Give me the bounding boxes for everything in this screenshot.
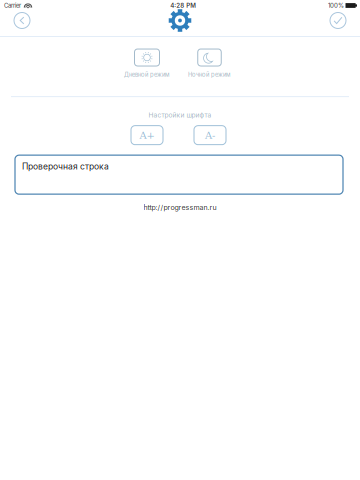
button[interactable]: Ночной режим: [178, 49, 241, 78]
staticText: A+: [139, 129, 154, 141]
staticText: A-: [205, 129, 215, 141]
staticText: http://progressman.ru: [143, 203, 216, 212]
staticText: Настройки шрифта: [148, 111, 211, 119]
button[interactable]: A-: [178, 124, 241, 146]
button[interactable]: Back: [7, 8, 37, 33]
staticText: Carrier: [4, 2, 21, 9]
button[interactable]: Дневной режим: [116, 49, 178, 78]
staticText: Дневной режим: [124, 71, 170, 78]
staticText: 100%: [328, 2, 344, 9]
staticText: Ночной режим: [188, 71, 231, 78]
button[interactable]: A+: [115, 124, 178, 146]
staticText: Проверочная строка: [22, 161, 109, 171]
staticText: 4:28 PM: [170, 2, 196, 9]
button[interactable]: Settings: [165, 8, 195, 33]
button[interactable]: Done: [323, 8, 353, 33]
